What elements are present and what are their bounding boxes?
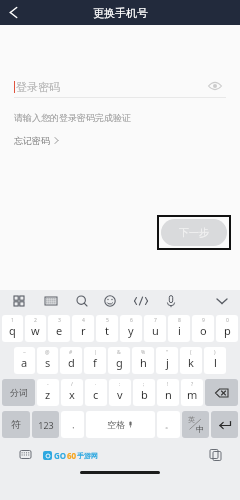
staticText: f — [93, 355, 97, 370]
staticText: @ — [45, 349, 50, 356]
staticText: w — [31, 323, 40, 338]
staticText: 中 — [196, 424, 204, 434]
staticText: 分词 — [10, 387, 28, 398]
staticText: o — [200, 323, 207, 338]
staticText: 6 — [130, 317, 133, 324]
button[interactable]: ， — [61, 411, 84, 438]
button[interactable]: Apps — [11, 293, 27, 309]
staticText: g — [116, 355, 123, 370]
staticText: 忘记密码 — [14, 135, 50, 146]
staticText: ! — [167, 381, 169, 388]
button[interactable]: Clipboard history — [208, 447, 223, 462]
button[interactable]: 7 — [144, 315, 166, 342]
button[interactable]: & — [108, 347, 130, 374]
button[interactable]: 1 — [2, 315, 23, 342]
staticText: # — [69, 349, 73, 356]
staticText: b — [141, 387, 148, 402]
staticText: r — [81, 323, 86, 338]
staticText: 8 — [178, 317, 181, 324]
staticText: 手游网 — [77, 451, 98, 460]
staticText: ; — [143, 381, 145, 388]
button[interactable]: 。 — [157, 411, 180, 438]
button[interactable]: 5 — [96, 315, 118, 342]
staticText: ? — [191, 381, 194, 388]
staticText: y — [128, 323, 134, 338]
staticText: 更换手机号 — [93, 6, 148, 20]
staticText: p — [224, 323, 231, 338]
staticText: s — [45, 355, 51, 370]
button[interactable]: 0 — [216, 315, 238, 342]
button[interactable]: 分词 — [2, 379, 35, 406]
button[interactable]: ; — [133, 379, 155, 406]
button[interactable]: 符 — [2, 411, 30, 438]
button[interactable]: - — [37, 379, 59, 406]
button[interactable]: 空格 — [86, 411, 155, 438]
button[interactable]: 2 — [25, 315, 46, 342]
staticText: m — [187, 387, 198, 402]
staticText: 空格 — [107, 419, 125, 430]
staticText: t — [105, 323, 109, 338]
button[interactable]: Keyboard settings — [18, 447, 33, 462]
button[interactable]: " — [156, 347, 178, 374]
staticText: n — [165, 387, 172, 402]
staticText: 9 — [202, 317, 205, 324]
staticText: " — [166, 349, 169, 356]
button[interactable]: Enter — [211, 411, 238, 438]
button[interactable]: 4 — [72, 315, 94, 342]
staticText: 请输入您的登录密码完成验证 — [14, 112, 131, 123]
button[interactable]: Clipboard — [133, 293, 149, 309]
button[interactable]: ? — [181, 379, 203, 406]
staticText: 7 — [154, 317, 157, 324]
button[interactable]: # — [60, 347, 82, 374]
button[interactable]: @ — [37, 347, 58, 374]
staticText: | — [94, 349, 97, 356]
staticText: i — [178, 323, 181, 338]
staticText: 登录密码 — [16, 80, 60, 94]
staticText: 0 — [226, 317, 229, 324]
button[interactable]: 忘记密码 — [14, 135, 60, 146]
staticText: 1 — [11, 317, 14, 324]
staticText: ~ — [23, 349, 26, 356]
button[interactable]: % — [132, 347, 154, 374]
staticText: x — [69, 387, 75, 402]
button[interactable]: 9 — [192, 315, 214, 342]
staticText: 英 — [188, 415, 195, 424]
button[interactable]: ! — [157, 379, 179, 406]
staticText: a — [21, 355, 28, 370]
button[interactable]: ( — [180, 347, 202, 374]
button[interactable]: Backspace — [205, 379, 238, 406]
button[interactable]: Show password — [206, 77, 224, 95]
button[interactable]: | — [84, 347, 106, 374]
staticText: h — [140, 355, 147, 370]
button[interactable]: Emoji — [102, 293, 118, 309]
staticText: 5 — [106, 317, 109, 324]
staticText: · — [95, 381, 97, 388]
button[interactable]: Keyboard layout — [43, 293, 59, 309]
staticText: z — [45, 387, 51, 402]
staticText: k — [188, 355, 194, 370]
staticText: 3 — [58, 317, 61, 324]
staticText: 符 — [11, 418, 21, 431]
button[interactable]: Hide keyboard — [214, 293, 230, 309]
button[interactable]: Switch language — [182, 411, 209, 438]
button[interactable]: ) — [204, 347, 226, 374]
button[interactable]: 123 — [32, 411, 59, 438]
button[interactable]: Voice input — [163, 293, 179, 309]
button[interactable]: 6 — [120, 315, 142, 342]
button[interactable]: 3 — [48, 315, 70, 342]
staticText: : — [119, 381, 121, 388]
button[interactable]: 下一步 — [161, 219, 227, 246]
staticText: / — [71, 381, 73, 388]
button[interactable]: : — [109, 379, 131, 406]
staticText: l — [214, 355, 217, 370]
button[interactable]: Back — [0, 0, 25, 25]
staticText: 下一步 — [179, 226, 209, 239]
staticText: v — [117, 387, 123, 402]
button[interactable]: Search — [74, 293, 90, 309]
staticText: e — [56, 323, 63, 338]
staticText: u — [152, 323, 159, 338]
button[interactable]: 8 — [168, 315, 190, 342]
button[interactable]: / — [61, 379, 83, 406]
button[interactable]: · — [85, 379, 107, 406]
button[interactable]: ~ — [14, 347, 35, 374]
